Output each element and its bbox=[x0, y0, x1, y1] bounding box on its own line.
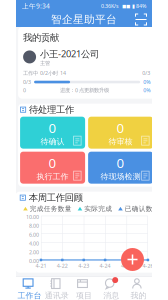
staticText: 0.00 bbox=[29, 257, 39, 265]
button[interactable]: 通讯录 bbox=[43, 277, 70, 300]
staticText: 消息 bbox=[103, 291, 119, 300]
staticText: 工作台 bbox=[18, 291, 42, 300]
staticText: 通讯录 bbox=[45, 291, 69, 300]
staticText: 4-23 bbox=[78, 262, 89, 269]
staticText: 0/3 bbox=[142, 69, 150, 76]
staticText: 2.00 bbox=[29, 249, 39, 256]
staticText: 执行工作 bbox=[37, 172, 69, 181]
staticText: 完成任务数量 bbox=[30, 205, 72, 213]
staticText: 4-24 bbox=[100, 262, 111, 269]
button[interactable]: Scan bbox=[130, 12, 152, 26]
staticText: ◼◼ ▮ 84% bbox=[122, 2, 146, 10]
staticText: 10.00 bbox=[26, 213, 39, 221]
button[interactable]: 0 bbox=[88, 117, 153, 149]
staticText: 4-22 bbox=[57, 262, 68, 269]
staticText: 待现场检测 bbox=[101, 172, 141, 181]
staticText: 我的贡献 bbox=[23, 32, 59, 43]
staticText: 4-25 bbox=[121, 262, 132, 269]
staticText: 进度：0 点更新数升级 bbox=[60, 87, 109, 94]
button[interactable]: 工作台 bbox=[16, 277, 43, 300]
button[interactable]: 我的 bbox=[125, 277, 152, 300]
staticText: 项目 bbox=[76, 291, 92, 300]
staticText: 0% bbox=[143, 87, 150, 94]
button[interactable]: Add bbox=[121, 248, 144, 271]
staticText: 已确认数 bbox=[125, 205, 153, 213]
staticText: 0 bbox=[49, 154, 57, 172]
button[interactable]: 消息 bbox=[98, 277, 125, 300]
staticText: 上午9:34 bbox=[22, 2, 50, 10]
staticText: 本周工作回顾 bbox=[29, 192, 83, 203]
staticText: 智企星助平台 bbox=[51, 13, 117, 26]
staticText: 4-21 bbox=[35, 262, 46, 269]
staticText: 4.00 bbox=[29, 240, 39, 247]
staticText: 0% bbox=[143, 78, 150, 86]
staticText: 待确认 bbox=[41, 137, 65, 146]
staticText: 0 bbox=[117, 154, 125, 172]
staticText: 小王-2021公司 bbox=[40, 47, 99, 60]
staticText: 0.36K/s bbox=[101, 2, 119, 10]
staticText: 待处理工作 bbox=[29, 104, 74, 115]
staticText: 我的 bbox=[130, 291, 146, 300]
staticText: 工作中 0/2小时 14 bbox=[23, 69, 66, 76]
staticText: 4-26 bbox=[142, 262, 153, 269]
staticText: 6.00 bbox=[29, 231, 39, 238]
staticText: 0 bbox=[49, 119, 57, 137]
button[interactable]: 0 bbox=[20, 152, 85, 184]
staticText: 0 bbox=[23, 87, 26, 94]
button[interactable]: 项目 bbox=[70, 277, 98, 300]
button[interactable]: 0 bbox=[20, 117, 85, 149]
staticText: 实际完成 bbox=[84, 205, 112, 213]
staticText: 8.00 bbox=[29, 222, 39, 229]
button[interactable]: 0 bbox=[88, 152, 153, 184]
staticText: 0 bbox=[117, 119, 125, 137]
staticText: 0/3 bbox=[23, 78, 31, 86]
staticText: 主管 bbox=[40, 60, 50, 66]
staticText: 待审核 bbox=[109, 137, 133, 146]
